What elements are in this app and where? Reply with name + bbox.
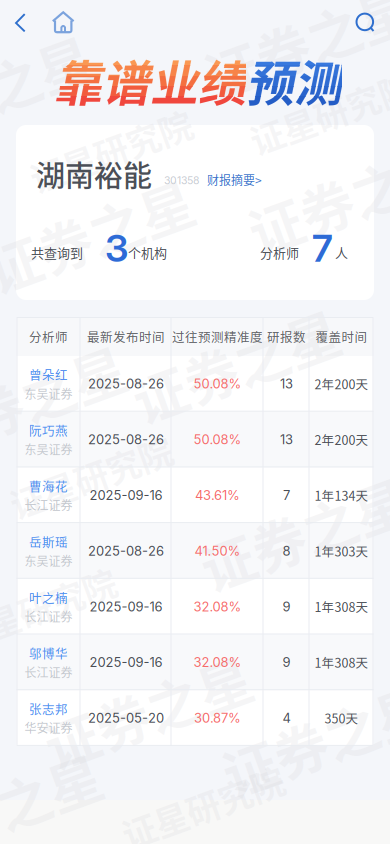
staticText: 东吴证券 [24,385,72,402]
staticText: 预测 [246,45,342,114]
staticText: 证券之星 [200,2,390,80]
staticText: 4 [282,710,290,726]
staticText: 50.08% [193,376,241,392]
staticText: 长江证券 [24,496,72,513]
staticText: 邬博华 [29,644,68,662]
staticText: 2025-05-20 [88,710,164,726]
staticText: 证星研究院 [246,88,390,137]
staticText: 财报摘要> [207,171,262,188]
staticText: 41.50% [194,543,240,559]
staticText: 301358 [164,174,199,187]
staticText: 32.08% [193,654,241,670]
staticText: 证券之星 [0,770,106,844]
staticText: 1年308天 [314,653,368,671]
button[interactable]: 邬博华 [16,634,80,690]
staticText: 靠谱业绩 [54,45,246,114]
staticText: 长江证券 [24,663,72,681]
staticText: 岳斯瑶 [29,533,68,551]
button[interactable]: 财报摘要> [0,0,55,17]
staticText: 9 [282,654,290,670]
staticText: 阮巧燕 [29,421,68,439]
staticText: 靠谱业绩 [54,45,246,114]
staticText: 研报数 [267,327,306,346]
button[interactable]: 曹海花 [16,467,80,523]
staticText: 3 [105,225,128,271]
staticText: 9 [282,599,290,614]
staticText: 最新发布时间 [87,327,165,346]
button[interactable]: 叶之楠 [16,579,80,634]
staticText: 预测 [246,45,342,114]
staticText: 13 [280,432,293,447]
staticText: 2025-09-16 [89,654,162,670]
staticText: 7 [283,487,290,503]
staticText: 50.08% [193,432,241,447]
staticText: 靠谱业绩 [54,45,246,114]
staticText: 证券之星 [40,672,256,750]
staticText: 曹海花 [29,477,68,495]
staticText: 过往预测精准度 [172,327,263,346]
button[interactable]: 曾朵红 [16,356,80,412]
staticText: 证星研究院 [26,126,196,175]
staticText: 东吴证券 [24,440,72,458]
button[interactable]: 岳斯瑶 [16,523,80,579]
staticText: 2年200天 [314,375,368,393]
staticText: 湖南裕能 [36,153,152,195]
staticText: 证券之星 [218,700,390,778]
staticText: 2025-08-26 [88,376,164,392]
staticText: 2025-09-16 [89,487,162,503]
staticText: 证券之星 [0,362,130,440]
staticText: 东吴证券 [24,552,72,569]
staticText: 2025-09-16 [89,599,162,614]
staticText: 1年308天 [314,598,368,616]
staticText: 分析师 [29,327,68,346]
staticText: 分析师 [260,243,299,262]
staticText: 曾朵红 [29,366,68,384]
staticText: 证星研究院 [118,782,288,831]
staticText: 预测 [246,45,342,114]
button[interactable]: Home [44,0,88,44]
staticText: 13 [280,376,293,392]
button[interactable]: Back [0,0,44,44]
staticText: 靠谱业绩 [54,45,246,114]
staticText: 人 [335,243,348,262]
staticText: 预测 [246,45,342,114]
staticText: 张志邦 [29,700,68,718]
staticText: 证券之星 [244,158,390,236]
staticText: 叶之楠 [29,588,68,606]
button[interactable]: 张志邦 [16,690,80,746]
staticText: 证券之星 [128,326,344,404]
button[interactable]: 阮巧燕 [16,412,80,467]
staticText: 预测 [246,45,342,114]
staticText: 1年134天 [314,486,368,504]
button[interactable]: Search [346,0,390,44]
staticText: 7 [312,225,333,271]
staticText: 1年303天 [314,542,368,560]
staticText: 证券之星 [0,196,198,274]
staticText: 证星研究院 [6,452,176,501]
staticText: 证星研究院 [0,584,120,633]
staticText: 2025-08-26 [88,543,164,559]
staticText: 共查询到 [31,243,83,262]
staticText: 30.87% [194,710,241,726]
staticText: 2年200天 [314,430,368,449]
staticText: 350天 [324,709,358,727]
staticText: 预测 [246,45,342,114]
staticText: 覆盖时间 [315,327,367,346]
staticText: 证券之星 [196,494,390,572]
staticText: 8 [282,543,290,559]
staticText: 华安证券 [24,719,72,736]
staticText: 靠谱业绩 [54,45,246,114]
staticText: 43.61% [195,487,240,503]
staticText: 靠谱业绩 [54,45,246,114]
staticText: 个机构 [128,243,167,262]
staticText: 32.08% [193,599,241,614]
staticText: 证券之星 [0,52,96,130]
staticText: 长江证券 [24,607,72,625]
staticText: 2025-08-26 [88,432,164,447]
